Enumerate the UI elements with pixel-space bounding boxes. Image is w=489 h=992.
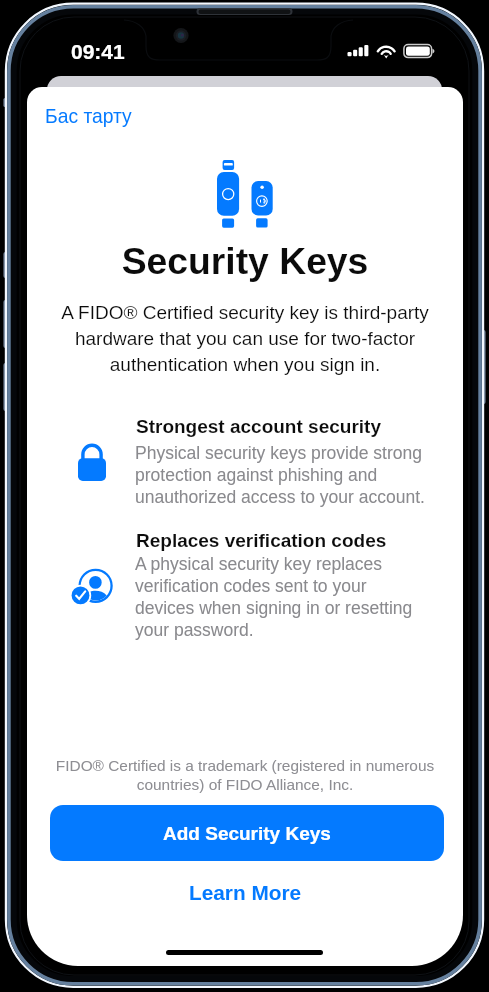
staticText: Replaces verification codes [136,530,387,551]
button[interactable]: Бас тарту [36,100,141,134]
staticText: Бас тарту [45,106,132,128]
staticText: Physical security keys provide strong pr… [135,443,429,507]
staticText: Strongest account security [136,416,381,437]
staticText: A physical security key replaces verific… [135,554,429,640]
button[interactable]: Learn More [27,869,463,915]
staticText: 09:41 [71,40,125,63]
staticText: Learn More [189,881,302,904]
staticText: Add Security Keys [163,823,331,844]
staticText: Security Keys [27,240,463,282]
staticText: FIDO® Certified is a trademark (register… [45,757,445,793]
staticText: A FIDO® Certified security key is third-… [45,302,445,375]
button[interactable]: Add Security Keys [50,805,444,861]
